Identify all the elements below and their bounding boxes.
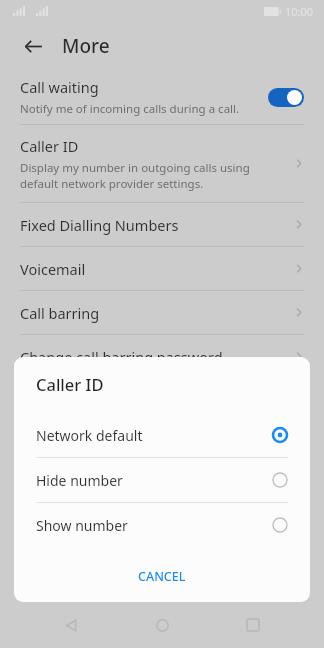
button[interactable]: Call barring <box>0 291 324 334</box>
staticText: Network default <box>36 426 272 445</box>
staticText: Display my number in outgoing calls usin… <box>20 160 250 191</box>
staticText: More <box>62 33 110 59</box>
staticText: Fixed Dialling Numbers <box>20 215 293 235</box>
button[interactable]: Caller ID <box>0 125 324 202</box>
button[interactable]: Voicemail <box>0 247 324 290</box>
button[interactable]: Change call barring password <box>0 335 324 378</box>
button[interactable]: Fixed Dialling Numbers <box>0 203 324 246</box>
button[interactable]: Home <box>142 605 182 645</box>
button[interactable]: Call waiting toggle <box>268 88 304 107</box>
staticText: Voicemail <box>20 259 293 279</box>
staticText: CANCEL <box>138 568 186 585</box>
button[interactable]: Recents <box>233 605 273 645</box>
button[interactable]: CANCEL <box>122 561 202 592</box>
staticText: Hide number <box>36 471 272 490</box>
button[interactable]: Hide number <box>14 458 310 502</box>
staticText: 10:00 <box>285 4 314 19</box>
staticText: Call waiting <box>20 77 99 97</box>
staticText: Call barring <box>20 303 293 323</box>
staticText: Change call barring password <box>20 347 293 367</box>
button[interactable]: Show number <box>14 503 310 547</box>
button[interactable]: Network default <box>14 413 310 457</box>
staticText: Show number <box>36 516 272 535</box>
button[interactable]: Back <box>51 605 91 645</box>
staticText: Caller ID <box>20 136 79 156</box>
staticText: Caller ID <box>36 373 104 395</box>
staticText: Notify me of incoming calls during a cal… <box>20 101 240 117</box>
button[interactable]: Call waiting <box>0 70 324 124</box>
button[interactable]: Back <box>18 31 48 61</box>
